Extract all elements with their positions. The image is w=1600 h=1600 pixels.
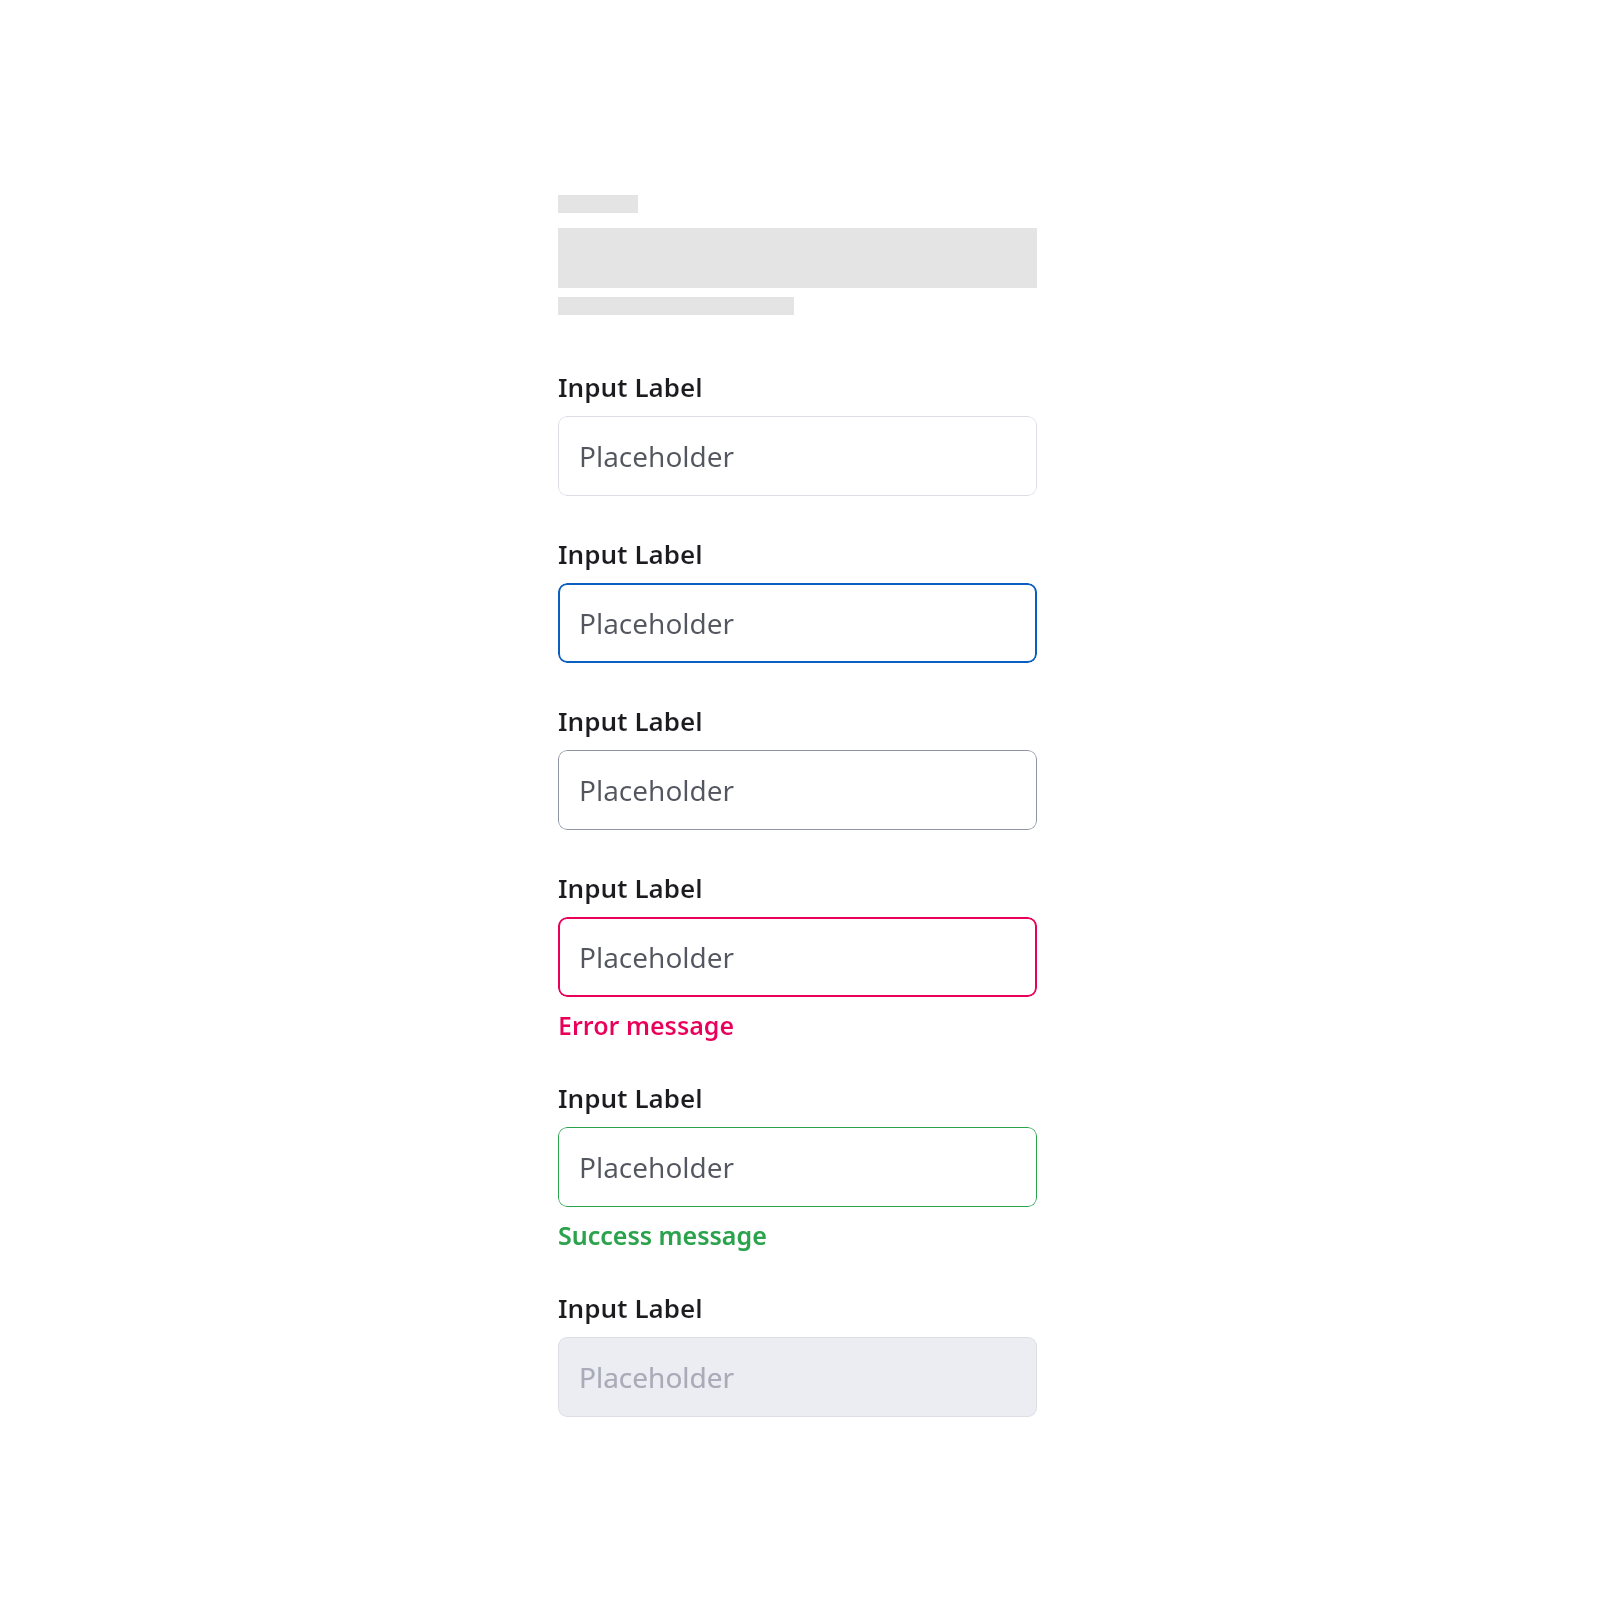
- staticText: Placeholder: [579, 771, 735, 809]
- staticText: Placeholder: [579, 1358, 735, 1396]
- staticText: Success message: [558, 1218, 767, 1252]
- button[interactable]: Placeholder: [558, 416, 1037, 496]
- staticText: Input Label: [558, 1080, 703, 1115]
- staticText: Input Label: [558, 703, 703, 738]
- staticText: Input Label: [558, 369, 703, 404]
- staticText: Placeholder: [579, 437, 735, 475]
- button[interactable]: Placeholder: [558, 1127, 1037, 1207]
- button[interactable]: Placeholder: [558, 750, 1037, 830]
- staticText: Placeholder: [579, 938, 735, 976]
- staticText: Error message: [558, 1008, 735, 1042]
- staticText: Placeholder: [579, 604, 735, 642]
- staticText: Input Label: [558, 536, 703, 571]
- button[interactable]: Placeholder: [558, 583, 1037, 663]
- staticText: Placeholder: [579, 1148, 735, 1186]
- staticText: Input Label: [558, 870, 703, 905]
- button[interactable]: Placeholder: [558, 917, 1037, 997]
- button[interactable]: Placeholder: [558, 1337, 1037, 1417]
- staticText: Input Label: [558, 1290, 703, 1325]
